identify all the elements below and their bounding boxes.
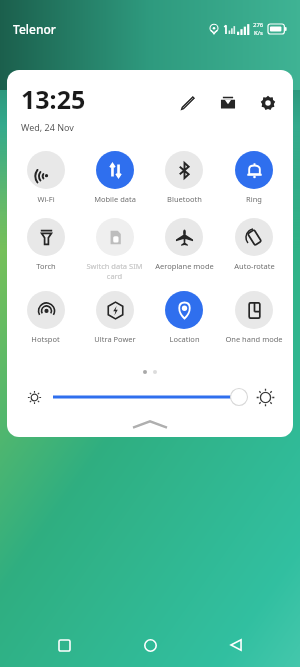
button[interactable]: Location <box>149 289 219 346</box>
button[interactable]: Home <box>128 623 172 667</box>
button[interactable]: Bluetooth <box>149 149 219 206</box>
staticText: Location <box>169 334 200 344</box>
staticText: One hand mode <box>225 334 283 344</box>
button[interactable]: Recents <box>42 623 86 667</box>
staticText: Wi-Fi <box>37 194 55 204</box>
button[interactable]: Torch <box>11 216 80 273</box>
button[interactable]: Ultra Power <box>80 289 149 346</box>
button[interactable]: Notifications <box>215 90 241 116</box>
button[interactable]: Hotspot <box>11 289 80 346</box>
staticText: Switch data SIM card <box>80 261 149 281</box>
button[interactable]: Back <box>214 623 258 667</box>
button[interactable]: Bright <box>253 385 277 409</box>
staticText: 276 <box>253 21 264 29</box>
button[interactable]: Brightness <box>45 384 253 410</box>
staticText: Aeroplane mode <box>155 261 214 271</box>
staticText: Hotspot <box>31 334 60 344</box>
button[interactable]: Ring <box>219 149 289 206</box>
button[interactable]: Aeroplane mode <box>149 216 219 273</box>
staticText: Auto-rotate <box>234 261 275 271</box>
staticText: Torch <box>36 261 56 271</box>
button[interactable]: Dim <box>23 386 45 408</box>
button[interactable]: Auto-rotate <box>219 216 289 273</box>
button[interactable]: Mobile data <box>80 149 149 206</box>
staticText: Bluetooth <box>167 194 202 204</box>
staticText: Wed, 24 Nov <box>21 121 74 133</box>
button[interactable]: One hand mode <box>219 289 289 346</box>
button[interactable]: Switch data SIM card <box>80 216 149 283</box>
staticText: Ultra Power <box>94 334 136 344</box>
staticText: Mobile data <box>94 194 136 204</box>
button[interactable]: Wi-Fi <box>11 149 80 206</box>
staticText: K/s <box>254 29 263 37</box>
button[interactable]: Edit <box>175 90 201 116</box>
staticText: 13:25 <box>21 82 86 116</box>
staticText: Ring <box>246 194 262 204</box>
button[interactable]: Settings <box>255 90 281 116</box>
staticText: Telenor <box>13 21 56 37</box>
